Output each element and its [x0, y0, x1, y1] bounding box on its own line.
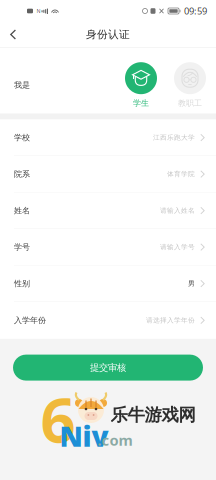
button[interactable]: 姓名 [0, 193, 216, 229]
staticText: 身份认证 [86, 28, 130, 41]
staticText: 请选择入学年份 [146, 316, 195, 324]
staticText: 体育学院 [167, 170, 195, 178]
button[interactable]: 学校 [0, 120, 216, 156]
staticText: 入学年份 [14, 315, 46, 325]
staticText: 性别 [14, 279, 30, 288]
staticText: Niv [59, 417, 108, 455]
button[interactable]: 提交审核 [13, 355, 203, 381]
staticText: 请输入姓名 [160, 206, 195, 215]
staticText: 我是 [14, 80, 30, 90]
staticText: 学校 [14, 133, 30, 142]
staticText: 6 [40, 378, 75, 460]
staticText: 院系 [14, 169, 30, 179]
staticText: 请输入学号 [160, 243, 195, 251]
staticText: 教职工 [178, 98, 202, 108]
staticText: .com [97, 430, 132, 450]
staticText: 姓名 [14, 206, 30, 215]
staticText: 男 [188, 279, 195, 288]
staticText: 提交审核 [90, 362, 126, 373]
staticText: N [36, 7, 40, 15]
staticText: 学号 [14, 242, 30, 252]
button[interactable]: 入学年份 [0, 302, 216, 339]
button[interactable]: 教职工 [168, 62, 212, 108]
button[interactable]: 学生 [119, 62, 163, 108]
staticText: 学生 [133, 98, 149, 108]
button[interactable]: 院系 [0, 156, 216, 193]
staticText: 乐牛游戏网 [110, 404, 195, 426]
button[interactable]: Back [0, 22, 26, 47]
button[interactable]: 学号 [0, 229, 216, 266]
button[interactable]: 性别 [0, 266, 216, 302]
staticText: 09:59 [184, 5, 207, 17]
staticText: 江西乐跑大学 [153, 133, 195, 142]
